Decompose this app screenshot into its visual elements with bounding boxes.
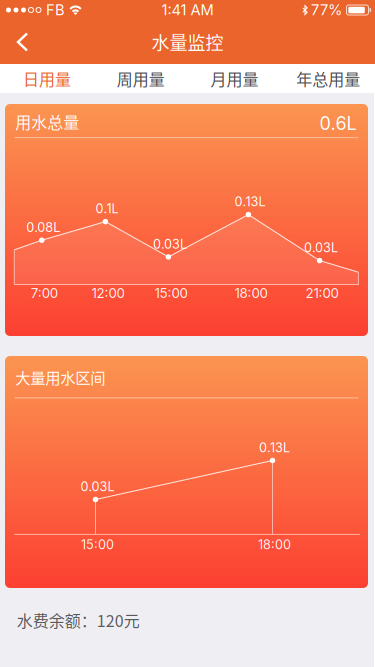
staticText: 0.03L bbox=[153, 236, 187, 252]
staticText: 年总用量 bbox=[296, 67, 360, 90]
button[interactable]: Back bbox=[0, 20, 50, 64]
staticText: 0.03L bbox=[304, 240, 338, 255]
staticText: 日用量 bbox=[23, 67, 71, 90]
staticText: 大量用水区间 bbox=[15, 366, 105, 388]
staticText: 12:00 bbox=[91, 285, 124, 301]
staticText: 水费余额：120元 bbox=[17, 608, 140, 632]
staticText: 0.08L bbox=[26, 220, 60, 235]
staticText: 18:00 bbox=[234, 285, 267, 301]
staticText: 0.03L bbox=[80, 479, 114, 494]
button[interactable]: 年总用量 bbox=[281, 64, 375, 93]
staticText: 0.6L bbox=[319, 112, 356, 134]
staticText: 水量监控 bbox=[151, 29, 223, 55]
staticText: 7:00 bbox=[31, 285, 58, 301]
staticText: 1:41 AM bbox=[161, 1, 213, 19]
button[interactable]: 周用量 bbox=[94, 64, 188, 93]
button[interactable]: 月用量 bbox=[187, 64, 281, 93]
staticText: 0.13L bbox=[234, 194, 265, 209]
staticText: 0.1L bbox=[95, 201, 118, 216]
staticText: 15:00 bbox=[154, 285, 187, 301]
staticText: 月用量 bbox=[210, 67, 258, 90]
staticText: FB bbox=[46, 1, 65, 19]
staticText: 15:00 bbox=[81, 537, 114, 552]
staticText: 0.13L bbox=[259, 440, 290, 455]
staticText: 21:00 bbox=[306, 285, 339, 301]
staticText: 周用量 bbox=[117, 67, 165, 90]
button[interactable]: 日用量 bbox=[0, 64, 94, 93]
staticText: 77% bbox=[311, 1, 342, 19]
staticText: 18:00 bbox=[258, 537, 291, 552]
staticText: 用水总量 bbox=[15, 110, 79, 133]
